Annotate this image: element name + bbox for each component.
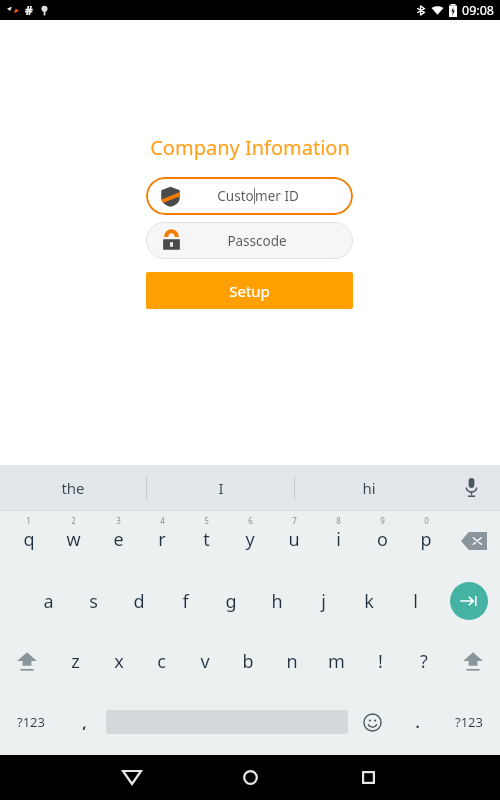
staticText: Setup <box>229 281 270 301</box>
staticText: p <box>420 527 432 552</box>
staticText: mer ID <box>255 187 299 205</box>
button[interactable]: 6 <box>228 511 272 571</box>
button[interactable]: b <box>226 631 270 691</box>
button[interactable]: h <box>254 571 300 631</box>
staticText: q <box>23 527 35 552</box>
button[interactable]: Space <box>106 691 348 753</box>
staticText: s <box>89 589 98 614</box>
button[interactable]: s <box>71 571 116 631</box>
button[interactable]: 9 <box>360 511 404 571</box>
button[interactable]: , <box>62 691 106 753</box>
button[interactable]: v <box>183 631 226 691</box>
button[interactable]: 3 <box>96 511 140 571</box>
staticText: b <box>242 649 254 674</box>
button[interactable]: d <box>116 571 162 631</box>
button[interactable]: a <box>26 571 71 631</box>
button[interactable]: z <box>54 631 97 691</box>
staticText: 1 <box>26 515 31 526</box>
staticText: z <box>71 649 80 674</box>
button[interactable]: Emoji <box>348 691 396 753</box>
button[interactable]: k <box>346 571 392 631</box>
button[interactable]: I <box>147 465 294 510</box>
button[interactable]: 2 <box>51 511 96 571</box>
staticText: , <box>82 712 87 732</box>
button[interactable]: Home <box>226 755 274 800</box>
staticText: t <box>203 527 210 552</box>
button[interactable]: ! <box>358 631 402 691</box>
staticText: 9 <box>380 515 385 526</box>
staticText: the <box>61 478 85 498</box>
button[interactable]: x <box>97 631 140 691</box>
staticText: 09:08 <box>462 2 494 19</box>
staticText: 5 <box>204 515 209 526</box>
staticText: j <box>321 589 326 614</box>
staticText: l <box>413 589 418 614</box>
staticText: ? <box>420 649 428 674</box>
staticText: Custo <box>217 187 254 205</box>
staticText: w <box>66 527 81 552</box>
button[interactable]: 1 <box>6 511 51 571</box>
button[interactable]: Passcode <box>146 222 353 259</box>
staticText: 2 <box>71 515 76 526</box>
button[interactable]: c <box>140 631 183 691</box>
staticText: h <box>271 589 283 614</box>
staticText: r <box>158 527 166 552</box>
button[interactable]: hi <box>295 465 442 510</box>
staticText: u <box>288 527 300 552</box>
button[interactable]: 7 <box>272 511 316 571</box>
staticText: g <box>225 589 237 614</box>
staticText: 7 <box>292 515 297 526</box>
button[interactable]: the <box>0 465 146 510</box>
staticText: I <box>218 478 224 498</box>
button[interactable]: j <box>300 571 346 631</box>
button[interactable]: Recent apps <box>344 755 392 800</box>
button[interactable]: Shift <box>0 631 54 691</box>
staticText: hi <box>362 478 376 498</box>
button[interactable]: m <box>314 631 358 691</box>
staticText: i <box>336 527 341 552</box>
button[interactable]: 0 <box>404 511 448 571</box>
staticText: 3 <box>116 515 121 526</box>
button[interactable]: Enter <box>438 571 500 631</box>
staticText: e <box>113 527 124 552</box>
staticText: m <box>328 649 345 674</box>
staticText: o <box>377 527 388 552</box>
staticText: Company Infomation <box>150 134 350 161</box>
staticText: . <box>415 712 420 732</box>
button[interactable]: ?123 <box>438 691 500 753</box>
button[interactable]: ?123 <box>0 691 62 753</box>
button[interactable]: Backspace <box>448 511 500 571</box>
staticText: ?123 <box>455 713 483 731</box>
staticText: a <box>43 589 54 614</box>
staticText: c <box>157 649 166 674</box>
button[interactable]: Custo <box>146 177 353 215</box>
button[interactable]: 4 <box>140 511 184 571</box>
staticText: d <box>133 589 145 614</box>
button[interactable]: Voice input <box>442 465 500 510</box>
staticText: n <box>286 649 298 674</box>
button[interactable]: ? <box>402 631 446 691</box>
button[interactable]: n <box>270 631 314 691</box>
button[interactable]: 5 <box>184 511 228 571</box>
staticText: x <box>114 649 124 674</box>
button[interactable]: . <box>396 691 438 753</box>
button[interactable]: l <box>392 571 438 631</box>
staticText: 4 <box>160 515 165 526</box>
button[interactable]: Back <box>108 755 156 800</box>
staticText: 0 <box>424 515 429 526</box>
staticText: # <box>25 2 33 18</box>
staticText: 6 <box>248 515 253 526</box>
button[interactable]: Setup <box>146 272 353 309</box>
button[interactable]: g <box>208 571 254 631</box>
button[interactable]: Shift <box>446 631 500 691</box>
staticText: v <box>200 649 210 674</box>
staticText: f <box>182 589 189 614</box>
staticText: ?123 <box>17 713 45 731</box>
staticText: 8 <box>336 515 341 526</box>
button[interactable]: 8 <box>316 511 360 571</box>
staticText: y <box>245 527 255 552</box>
staticText: Passcode <box>227 232 287 250</box>
staticText: k <box>364 589 374 614</box>
staticText: ! <box>378 649 383 674</box>
button[interactable]: f <box>162 571 208 631</box>
